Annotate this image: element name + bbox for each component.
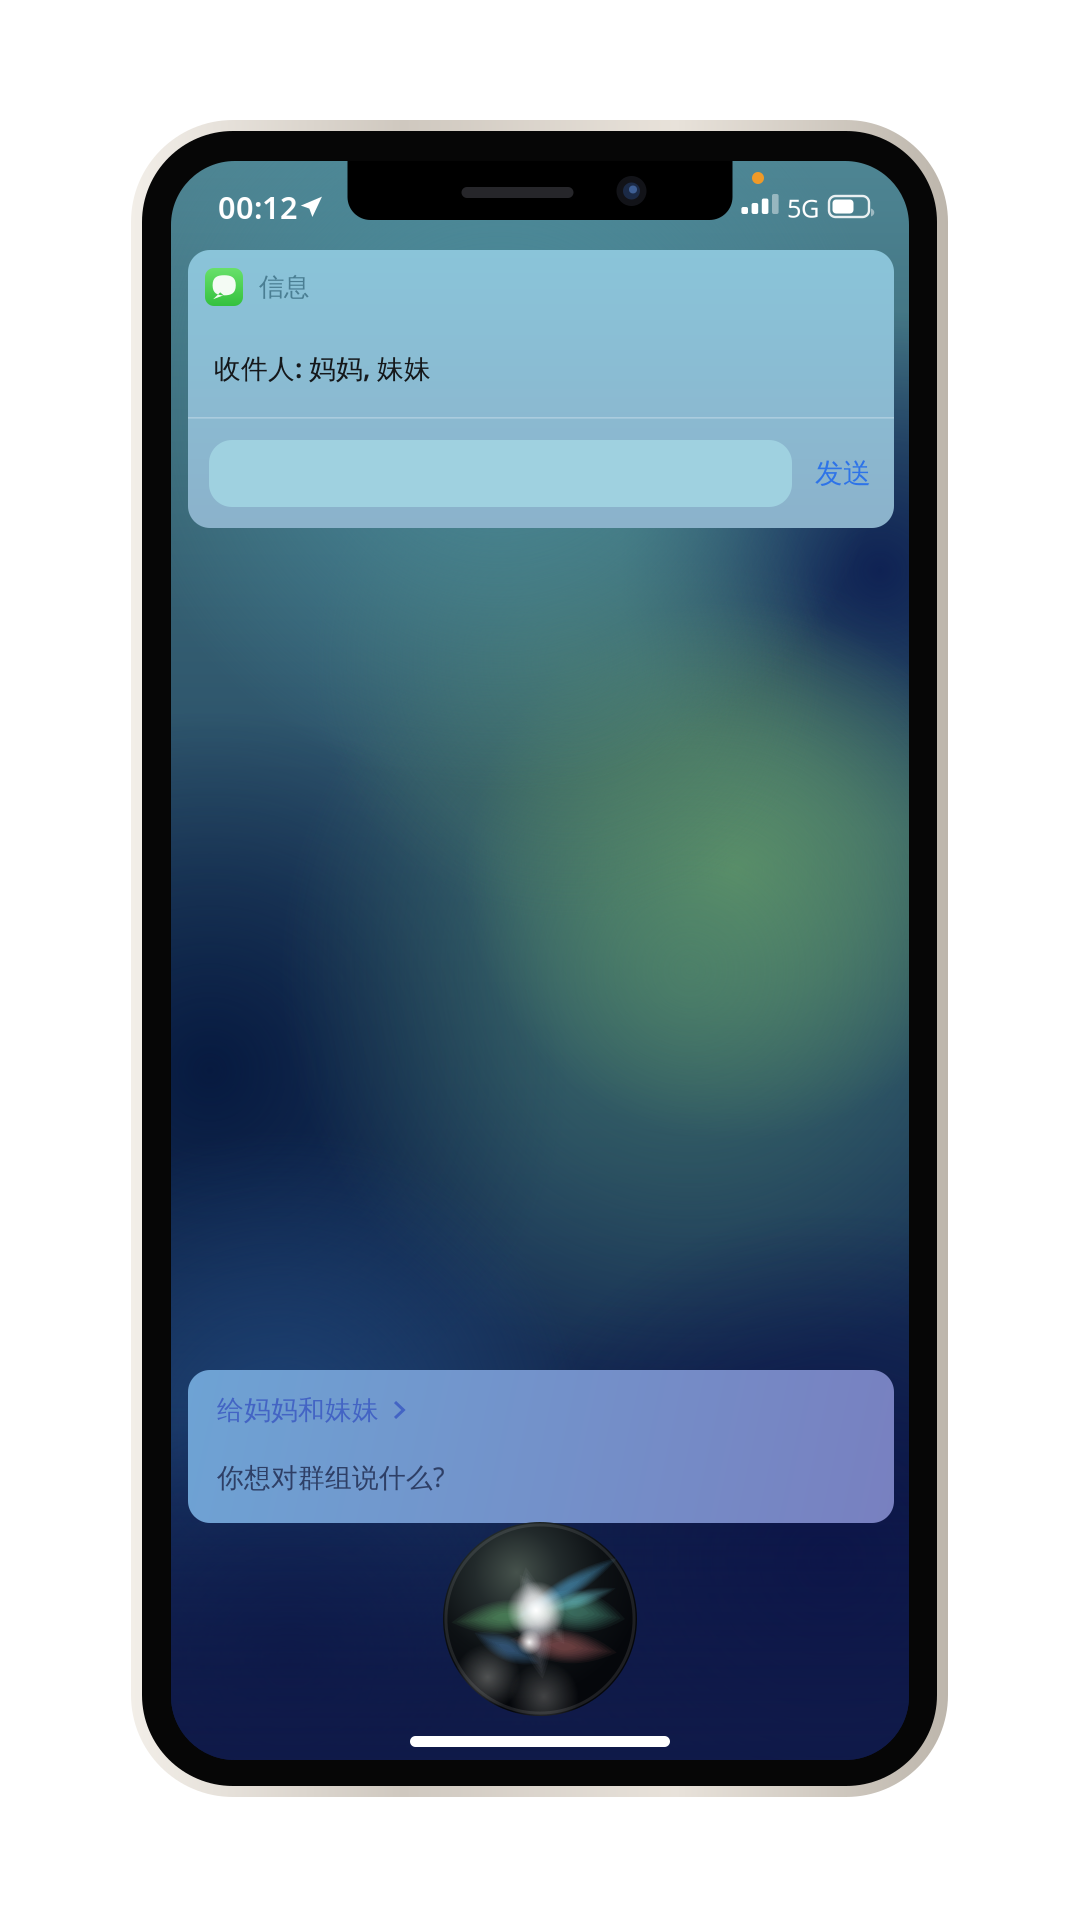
staticText: 收件人: 妈妈, 妹妹 — [214, 350, 431, 386]
button[interactable]: 给妈妈和妹妹 — [188, 1370, 894, 1523]
staticText: 信息 — [259, 271, 309, 302]
staticText: 发送 — [815, 456, 871, 491]
staticText: 你想对群组说什么? — [217, 1459, 445, 1495]
staticText: 给妈妈和妹妹 — [217, 1394, 379, 1426]
staticText: 5G — [787, 191, 819, 225]
button[interactable]: 发送 — [792, 440, 894, 507]
staticText: 00:12 — [218, 187, 298, 227]
